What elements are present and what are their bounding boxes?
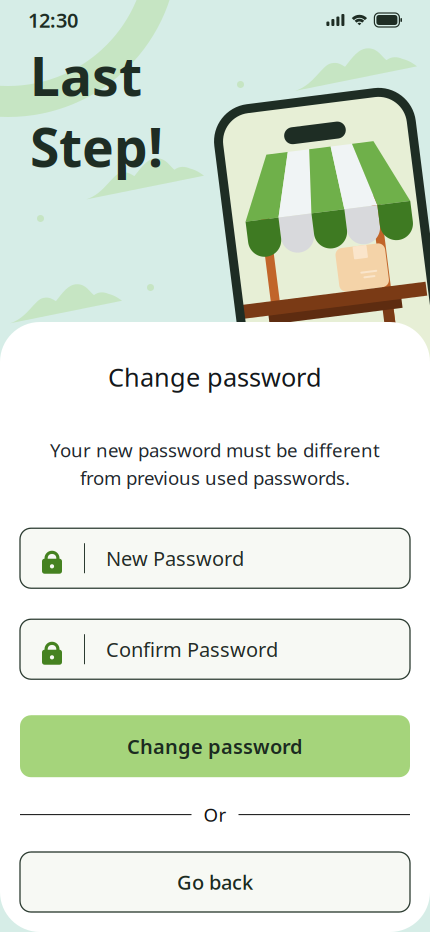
staticText: Step!	[30, 111, 163, 182]
staticText: Or	[203, 802, 226, 827]
staticText: Change password	[108, 360, 322, 394]
staticText: Last	[30, 40, 142, 111]
button[interactable]: Go back	[20, 852, 410, 912]
staticText: from previous used passwords.	[80, 465, 350, 490]
button[interactable]: Change password	[20, 715, 410, 777]
staticText: Confirm Password	[106, 636, 278, 662]
button[interactable]: New Password	[20, 528, 410, 588]
button[interactable]: Confirm Password	[20, 619, 410, 679]
staticText: Change password	[127, 733, 303, 759]
staticText: New Password	[106, 545, 244, 571]
staticText: Your new password must be different	[50, 438, 380, 462]
staticText: Go back	[177, 869, 253, 895]
staticText: 12:30	[28, 7, 78, 33]
